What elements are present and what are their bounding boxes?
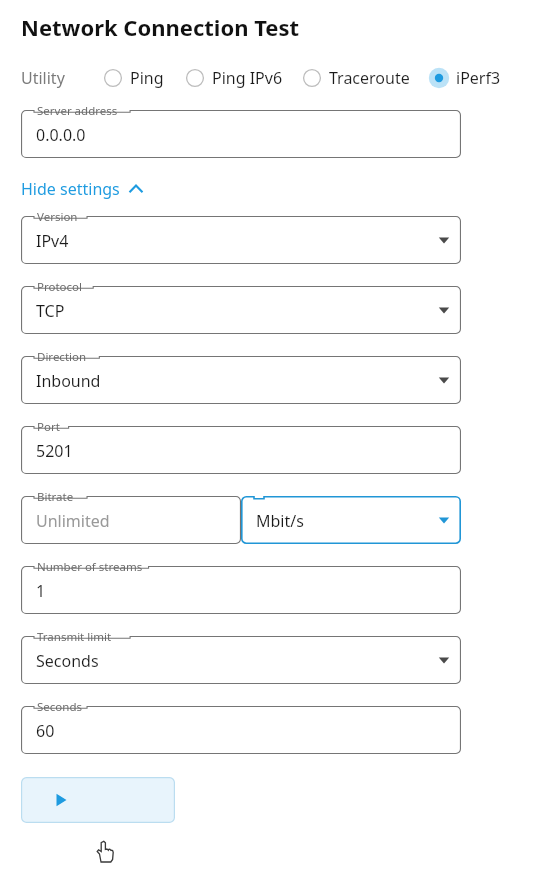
staticText: Traceroute <box>329 67 410 89</box>
button[interactable]: Bitrate <box>21 496 241 544</box>
staticText: Protocol <box>37 279 82 295</box>
staticText: Ping <box>130 67 164 89</box>
staticText: Seconds <box>36 650 99 672</box>
button[interactable]: Server address <box>21 110 461 158</box>
button[interactable]: Ping IPv6 <box>184 60 283 96</box>
staticText: iPerf3 <box>456 67 501 89</box>
staticText: Ping IPv6 <box>212 67 283 89</box>
staticText: Utility <box>21 67 65 89</box>
staticText: Server address <box>37 103 118 119</box>
button[interactable]: Direction <box>21 356 461 404</box>
button[interactable]: Version <box>21 216 461 264</box>
button[interactable]: Mbit/s <box>241 496 461 544</box>
staticText: Number of streams <box>37 559 143 575</box>
staticText: Bitrate <box>37 489 74 505</box>
staticText: 5201 <box>36 440 73 462</box>
button[interactable]: Transmit limit <box>21 636 461 684</box>
staticText: Hide settings <box>21 178 120 200</box>
staticText: 0.0.0.0 <box>36 124 86 146</box>
staticText: Inbound <box>36 370 101 392</box>
button[interactable]: iPerf3 <box>428 60 501 96</box>
staticText: Version <box>37 209 78 225</box>
button[interactable]: Number of streams <box>21 566 461 614</box>
staticText: Port <box>37 419 60 435</box>
button[interactable]: Start the test <box>21 777 175 823</box>
staticText: 60 <box>36 720 55 742</box>
staticText: Network Connection Test <box>21 12 300 42</box>
staticText: Mbit/s <box>256 510 304 532</box>
staticText: Transmit limit <box>37 629 112 645</box>
button[interactable]: Traceroute <box>301 60 410 96</box>
staticText: Direction <box>37 349 87 365</box>
staticText: TCP <box>36 300 65 322</box>
button[interactable]: Ping <box>102 60 164 96</box>
button[interactable]: Seconds <box>21 706 461 754</box>
staticText: Unlimited <box>36 510 110 532</box>
button[interactable]: Hide settings <box>21 176 144 202</box>
staticText: Seconds <box>37 699 82 715</box>
staticText: 1 <box>36 580 46 602</box>
staticText: IPv4 <box>36 230 69 252</box>
button[interactable]: Port <box>21 426 461 474</box>
other: Collapse settings <box>128 181 144 197</box>
button[interactable]: Protocol <box>21 286 461 334</box>
